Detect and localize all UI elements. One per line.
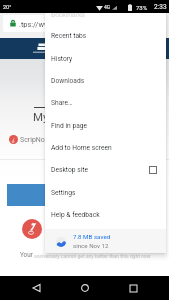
staticText: Recent tabs bbox=[51, 32, 87, 40]
staticText: 4G bbox=[104, 4, 111, 10]
staticText: My bbox=[33, 110, 49, 123]
staticText: Bookmarks bbox=[51, 13, 85, 19]
staticText: Settings bbox=[51, 189, 76, 197]
staticText: since Nov 12 bbox=[73, 242, 109, 249]
button[interactable]: Downloads bbox=[45, 70, 166, 92]
button[interactable]: Help & feedback bbox=[45, 204, 166, 226]
button[interactable]: Settings bbox=[45, 182, 166, 204]
button[interactable]: Recent tabs bbox=[45, 25, 166, 47]
staticText: Your bbox=[20, 251, 33, 258]
staticText: Share… bbox=[51, 99, 73, 107]
button[interactable]: History bbox=[45, 48, 166, 70]
staticText: Help & feedback bbox=[51, 211, 100, 219]
staticText: ScripNow bbox=[20, 136, 51, 144]
button[interactable]: Desktop site bbox=[45, 159, 166, 181]
staticText: 20° bbox=[3, 4, 12, 10]
button[interactable]: Help bbox=[22, 219, 42, 239]
button[interactable]: Back bbox=[24, 276, 48, 300]
button[interactable]: Bookmarks bbox=[45, 13, 166, 26]
staticText: 7.8 MB saved bbox=[73, 233, 111, 240]
staticText: anniversary cannot get any better than t… bbox=[34, 253, 151, 259]
staticText: 73% bbox=[136, 4, 148, 11]
button[interactable]: Recent apps bbox=[121, 276, 145, 300]
button[interactable]: 7.8 MB saved bbox=[45, 229, 166, 253]
staticText: Desktop site bbox=[51, 166, 88, 174]
staticText: .tps://www.scripnow.com bbox=[19, 20, 103, 29]
staticText: History bbox=[51, 55, 73, 63]
staticText: Downloads bbox=[51, 77, 85, 85]
button[interactable]: Share… bbox=[45, 92, 166, 114]
staticText: Add to Home screen bbox=[51, 144, 112, 152]
staticText: 2:33 bbox=[154, 3, 167, 11]
button[interactable]: Home bbox=[73, 276, 97, 300]
button[interactable]: Find in page bbox=[45, 115, 166, 137]
button[interactable]: Add to Home screen bbox=[45, 137, 166, 159]
staticText: Find in page bbox=[51, 122, 88, 130]
